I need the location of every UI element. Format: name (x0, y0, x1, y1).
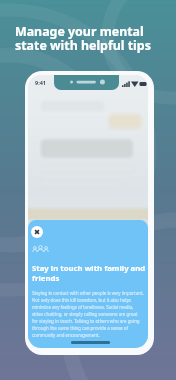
staticText: Manage your mental state with helpful ti… (15, 23, 151, 54)
staticText: Staying in contact with other people is … (32, 290, 144, 338)
staticText: Stay in touch with family and friends (32, 263, 146, 283)
button[interactable]: Close (31, 226, 43, 238)
staticText: 9:41 (35, 79, 46, 86)
